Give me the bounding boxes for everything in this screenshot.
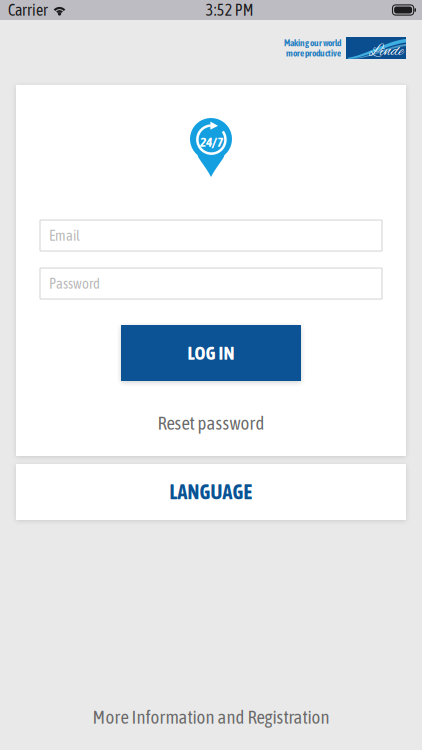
button[interactable]: Reset password	[40, 412, 382, 434]
staticText: Reset password	[157, 412, 264, 434]
staticText: 3:52 PM	[206, 1, 254, 19]
staticText: More Information and Registration	[92, 706, 329, 728]
staticText: Carrier	[8, 1, 48, 19]
staticText: Password	[49, 275, 100, 292]
button[interactable]: LOG IN	[121, 325, 301, 381]
button[interactable]: LANGUAGE	[16, 464, 406, 520]
staticText: Linde	[369, 41, 403, 62]
staticText: Email	[49, 227, 80, 244]
staticText: 24/7	[200, 134, 223, 150]
staticText: LOG IN	[187, 342, 234, 364]
staticText: Making our world	[284, 38, 341, 48]
staticText: more productive	[286, 48, 341, 58]
staticText: LANGUAGE	[169, 480, 252, 503]
button[interactable]: More Information and Registration	[0, 701, 422, 733]
